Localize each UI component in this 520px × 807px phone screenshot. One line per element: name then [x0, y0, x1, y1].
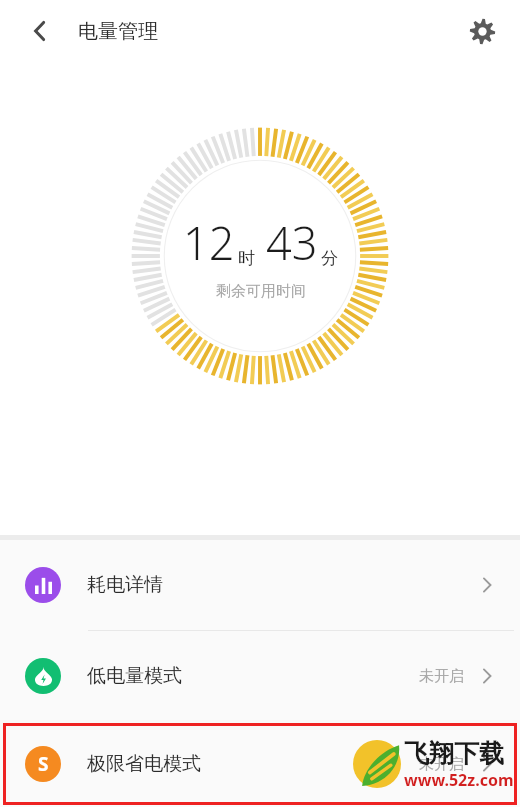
staticText: 低电量模式: [87, 664, 182, 688]
staticText: 耗电详情: [87, 573, 163, 597]
staticText: 飞翔下载: [404, 738, 504, 769]
button[interactable]: Settings: [456, 5, 508, 57]
button[interactable]: 低电量模式: [0, 631, 520, 721]
staticText: 未开启: [419, 667, 464, 686]
button[interactable]: Back: [14, 5, 66, 57]
staticText: 剩余可用时间: [216, 282, 306, 301]
button[interactable]: S: [0, 721, 520, 807]
staticText: 极限省电模式: [87, 752, 201, 776]
staticText: 43: [266, 212, 318, 273]
staticText: 电量管理: [78, 19, 158, 44]
staticText: 时: [238, 248, 255, 269]
button[interactable]: 耗电详情: [0, 540, 520, 630]
staticText: 未开启: [419, 755, 464, 774]
staticText: S: [38, 751, 49, 777]
staticText: 12: [183, 212, 235, 273]
staticText: www.52z.com: [404, 769, 514, 791]
staticText: 分: [321, 248, 338, 269]
